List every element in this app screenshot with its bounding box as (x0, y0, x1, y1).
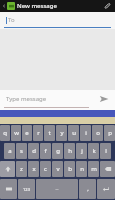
button[interactable]: p (104, 125, 115, 141)
button[interactable]: To (0, 12, 115, 27)
staticText: New message (17, 2, 57, 10)
staticText: u (72, 129, 76, 137)
staticText: s (20, 147, 23, 155)
staticText: f (44, 147, 47, 155)
staticText: k (92, 147, 96, 155)
button[interactable]: x (28, 161, 39, 177)
staticText: 123 (23, 187, 30, 192)
staticText: Type message (6, 95, 47, 103)
staticText: e (25, 129, 29, 137)
button[interactable]: Navigate up (0, 0, 7, 12)
button[interactable]: f (40, 143, 51, 159)
staticText: z (20, 165, 23, 173)
staticText: l (105, 147, 107, 155)
button[interactable]: c (40, 161, 51, 177)
button[interactable]: o (92, 125, 103, 141)
button[interactable]: j (76, 143, 87, 159)
staticText: To (8, 16, 15, 24)
staticText: a (8, 147, 12, 155)
staticText: i (85, 129, 87, 137)
button[interactable]: m (88, 161, 99, 177)
staticText: n (80, 165, 84, 173)
staticText: x (32, 165, 36, 173)
button[interactable]: z (16, 161, 27, 177)
button[interactable]: y (56, 125, 67, 141)
staticText: v (56, 165, 60, 173)
staticText: y (60, 129, 64, 137)
button[interactable]: e (22, 125, 32, 141)
staticText: t (48, 129, 51, 137)
button[interactable]: , (79, 179, 96, 199)
button[interactable]: Send (93, 90, 115, 107)
button[interactable]: q (0, 125, 10, 141)
button[interactable]: r (33, 125, 43, 141)
button[interactable]: Backspace (100, 161, 115, 177)
button[interactable]: d (28, 143, 39, 159)
button[interactable]: i (80, 125, 91, 141)
button[interactable]: l (100, 143, 111, 159)
button[interactable]: Attach (99, 0, 115, 12)
staticText: o (96, 129, 100, 137)
staticText: w (14, 129, 19, 137)
button[interactable]: b (64, 161, 75, 177)
staticText: , (87, 185, 89, 193)
button[interactable]: n (76, 161, 87, 177)
button[interactable]: s (16, 143, 27, 159)
button[interactable]: u (68, 125, 79, 141)
button[interactable]: Emoji keyboard (0, 179, 17, 199)
button[interactable]: Type message (6, 90, 93, 107)
button[interactable]: a (4, 143, 15, 159)
button[interactable]: h (64, 143, 75, 159)
button[interactable]: 123 (18, 179, 35, 199)
button[interactable]: g (52, 143, 63, 159)
button[interactable]: k (88, 143, 99, 159)
button[interactable]: Enter (97, 179, 115, 199)
button[interactable]: Shift (0, 161, 15, 177)
staticText: q (3, 129, 7, 137)
staticText: d (32, 147, 36, 155)
staticText: r (37, 129, 40, 137)
staticText: p (108, 129, 112, 137)
staticText: g (56, 147, 60, 155)
staticText: b (68, 165, 72, 173)
button[interactable]: t (44, 125, 55, 141)
button[interactable]: v (52, 161, 63, 177)
staticText: c (44, 165, 47, 173)
staticText: h (68, 147, 72, 155)
staticText: m (91, 165, 97, 173)
button[interactable]: w (11, 125, 21, 141)
staticText: j (81, 147, 83, 155)
